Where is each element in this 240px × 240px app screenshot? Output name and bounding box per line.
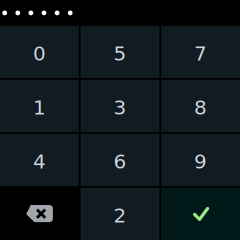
button[interactable]: 4 (0, 134, 79, 186)
button[interactable]: 7 (161, 26, 240, 78)
button[interactable]: 0 (0, 26, 79, 78)
staticText: 4 (33, 150, 46, 173)
staticText: 7 (194, 42, 207, 65)
button[interactable]: 3 (81, 80, 159, 132)
staticText: 9 (194, 150, 207, 173)
staticText: 5 (113, 42, 126, 65)
staticText: 3 (113, 96, 126, 119)
button[interactable]: 5 (81, 26, 159, 78)
staticText: 2 (113, 204, 126, 227)
staticText: 1 (33, 96, 46, 119)
staticText: 0 (33, 42, 46, 65)
button[interactable]: Delete (0, 188, 79, 240)
button[interactable]: 9 (161, 134, 240, 186)
button[interactable]: 8 (161, 80, 240, 132)
button[interactable]: 6 (81, 134, 159, 186)
button[interactable]: Confirm (161, 188, 240, 240)
button[interactable]: 1 (0, 80, 79, 132)
staticText: 6 (113, 150, 126, 173)
staticText: 8 (194, 96, 207, 119)
button[interactable]: 2 (81, 188, 159, 240)
